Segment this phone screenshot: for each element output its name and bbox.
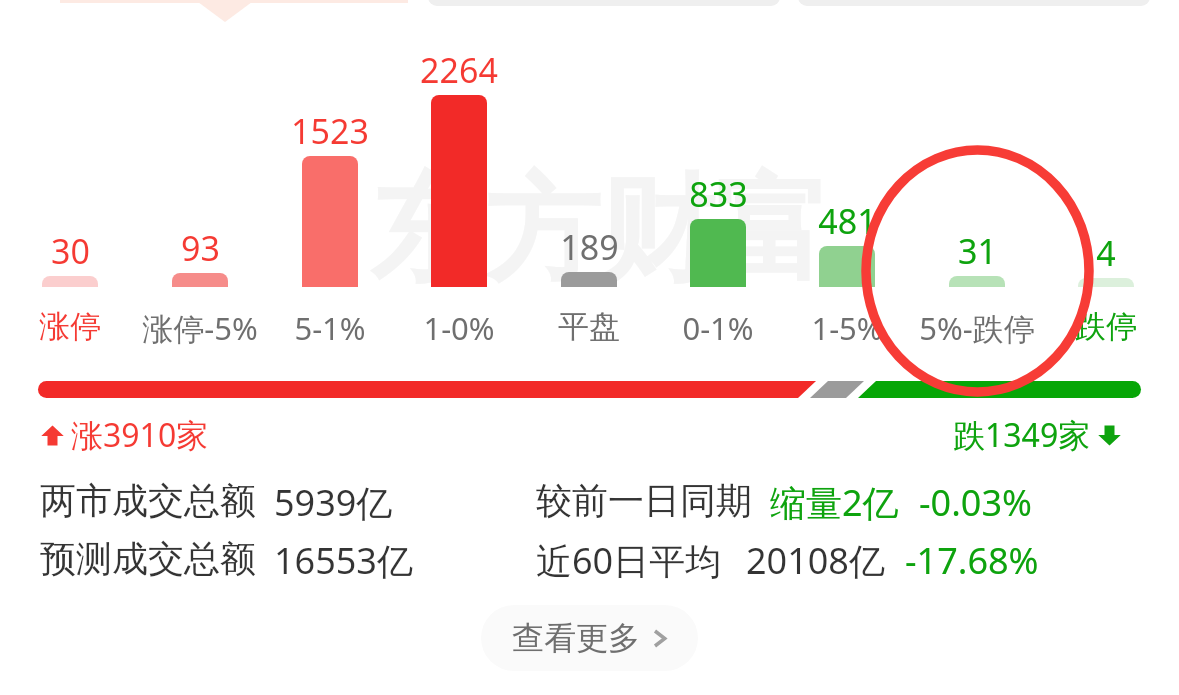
staticText: 20108亿	[746, 536, 885, 585]
button[interactable]: 2264	[379, 47, 539, 93]
staticText: 东方财富	[370, 158, 830, 303]
button[interactable]: 93	[120, 225, 280, 271]
button[interactable]: 5%-跌停	[887, 307, 1067, 349]
staticText: 4	[1096, 230, 1116, 276]
staticText: 1-0%	[423, 307, 495, 349]
staticText: -17.68%	[905, 536, 1039, 585]
staticText: 30	[51, 228, 90, 274]
button[interactable]: 31	[897, 228, 1057, 274]
staticText: 较前一日同期	[536, 478, 752, 523]
button[interactable]: 1-5%	[757, 307, 937, 349]
staticText: 31	[958, 228, 997, 274]
staticText: 5%-跌停	[919, 307, 1035, 349]
staticText: 两市成交总额	[40, 478, 256, 523]
button[interactable]: 0-1%	[628, 307, 808, 349]
button[interactable]: 833	[638, 171, 798, 217]
button[interactable]: 平盘	[499, 307, 679, 346]
button[interactable]: 481	[767, 198, 927, 244]
staticText: 查看更多	[512, 618, 640, 658]
staticText: 1-5%	[811, 307, 883, 349]
staticText: 1523	[291, 108, 369, 154]
staticText: 涨停	[39, 307, 101, 346]
staticText: 16553亿	[274, 536, 413, 585]
staticText: 93	[181, 225, 220, 271]
staticText: 0-1%	[682, 307, 754, 349]
staticText: 5-1%	[294, 307, 366, 349]
button[interactable]: 跌1349家	[953, 413, 1122, 457]
button[interactable]: 涨停	[0, 307, 160, 346]
staticText: 涨3910家	[71, 413, 209, 457]
staticText: 预测成交总额	[40, 536, 256, 581]
button[interactable]: 查看更多	[481, 605, 698, 671]
staticText: 2264	[420, 47, 498, 93]
staticText: 近60日平均	[536, 536, 722, 585]
staticText: 跌1349家	[953, 413, 1091, 457]
button[interactable]: 跌停	[1016, 307, 1179, 346]
button[interactable]: 1523	[250, 108, 410, 154]
button[interactable]: 涨停-5%	[110, 307, 290, 349]
button[interactable]: 1-0%	[369, 307, 549, 349]
staticText: 跌停	[1075, 307, 1137, 346]
button[interactable]: 5-1%	[240, 307, 420, 349]
staticText: 平盘	[558, 307, 620, 346]
staticText: 833	[689, 171, 748, 217]
button[interactable]: 30	[0, 228, 150, 274]
staticText: 5939亿	[274, 478, 393, 527]
staticText: 481	[818, 198, 877, 244]
other: Annotation highlight circle	[861, 145, 1094, 397]
button[interactable]: 189	[509, 224, 669, 270]
button[interactable]: 4	[1026, 230, 1179, 276]
staticText: 涨停-5%	[142, 307, 258, 349]
button[interactable]: 涨3910家	[40, 413, 209, 457]
staticText: 189	[560, 224, 619, 270]
staticText: -0.03%	[919, 478, 1032, 527]
staticText: 缩量2亿	[770, 478, 899, 527]
